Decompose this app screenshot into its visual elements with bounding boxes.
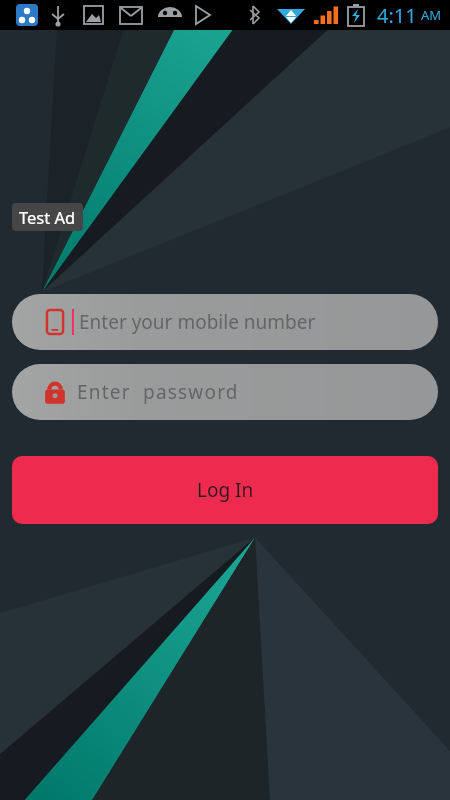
staticText: AM [421,6,442,24]
staticText: Log In [197,477,254,503]
staticText: Enter password [77,379,239,405]
staticText: Enter your mobile number [79,309,316,335]
other: Password [42,379,68,405]
staticText: Test Ad [19,206,76,228]
button[interactable]: Test Ad [12,203,83,231]
button[interactable]: Mobile number [12,294,438,350]
button[interactable]: Password [12,364,438,420]
staticText: 4:11 [377,2,417,29]
button[interactable]: Log In [12,456,438,524]
other: Mobile number [42,309,68,335]
